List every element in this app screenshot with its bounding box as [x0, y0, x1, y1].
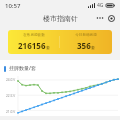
staticText: 216156: [18, 40, 46, 51]
staticText: 套: [91, 45, 95, 50]
staticText: 楼市指南针: [43, 14, 78, 23]
staticText: 22.5万: [6, 94, 16, 98]
staticText: 4G: [97, 2, 104, 9]
staticText: 10:57: [5, 2, 21, 10]
button[interactable]: More options: [95, 13, 105, 23]
button[interactable]: 在售房源套数: [8, 30, 112, 54]
staticText: 356: [77, 40, 91, 51]
button[interactable]: Target: [106, 13, 116, 23]
staticText: 在售房源套数: [23, 33, 45, 38]
staticText: 挂牌数量/套: [9, 65, 36, 72]
staticText: 24.0万: [6, 78, 16, 82]
staticText: 套: [46, 45, 50, 50]
staticText: 21.0万: [6, 110, 16, 114]
staticText: 今日新增房源: [75, 33, 97, 38]
